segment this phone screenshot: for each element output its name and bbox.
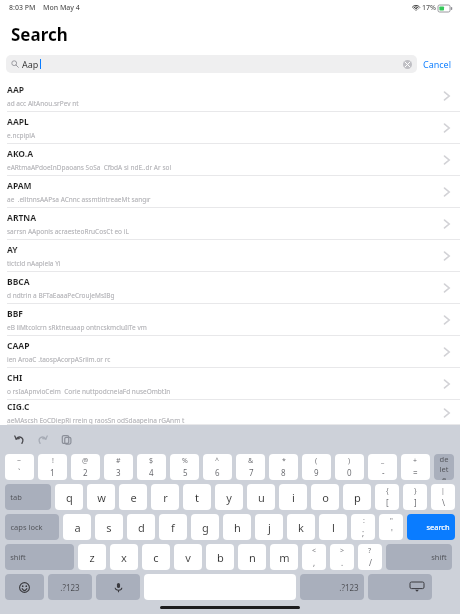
button[interactable]: key [302,454,331,480]
button[interactable]: BBCA [0,272,460,304]
staticText: ! [52,456,54,466]
button[interactable]: key [302,544,326,570]
button[interactable]: AAPL [0,112,460,144]
button[interactable]: key [379,514,403,540]
button[interactable]: h [223,514,251,540]
button[interactable]: key [368,454,397,480]
button[interactable]: o [311,484,339,510]
button[interactable]: l [319,514,347,540]
staticText: o rsIaApnvioCeim Corie nuttpodcneiaFd nu… [7,387,171,396]
button[interactable]: key [96,574,140,600]
button[interactable]: j [255,514,283,540]
button[interactable]: key [203,454,232,480]
staticText: ? [368,546,372,556]
staticText: CAAP [7,340,30,352]
button[interactable]: c [142,544,170,570]
button[interactable]: p [343,484,371,510]
button[interactable]: key [401,454,430,480]
button[interactable]: key [236,454,265,480]
button[interactable]: r [151,484,179,510]
button[interactable]: Redo [33,430,51,448]
button[interactable]: key [358,544,382,570]
staticText: m [279,550,290,565]
button[interactable]: AKO.A [0,144,460,176]
button[interactable]: m [270,544,298,570]
button[interactable]: Undo [10,430,28,448]
button[interactable]: d [127,514,155,540]
staticText: Mon May 4 [43,3,80,13]
staticText: : [363,516,365,526]
button[interactable]: key [335,454,364,480]
button[interactable]: x [110,544,138,570]
button[interactable]: key [137,454,166,480]
button[interactable]: a [63,514,91,540]
button[interactable]: tab [5,484,51,510]
staticText: 6 [215,467,220,478]
button[interactable]: u [247,484,275,510]
button[interactable]: key [351,514,375,540]
staticText: ; [362,527,365,538]
button[interactable]: g [191,514,219,540]
button[interactable]: i [279,484,307,510]
button[interactable]: CAAP [0,336,460,368]
button[interactable]: key [104,454,133,480]
button[interactable]: s [95,514,123,540]
button[interactable]: Paste [57,430,75,448]
staticText: * [282,456,286,466]
button[interactable]: n [238,544,266,570]
staticText: ae .elltnnsAAPsa ACnnc assmtintreaeMt sa… [7,195,151,204]
button[interactable]: key [5,454,34,480]
staticText: 5 [183,467,188,478]
button[interactable]: delete [434,454,454,480]
button[interactable]: shift [386,544,452,570]
button[interactable]: key [330,544,354,570]
button[interactable]: .?123 [300,574,364,600]
staticText: ] [414,497,417,508]
staticText: ad acc AltAnou.srPev nt [7,99,79,108]
button[interactable]: key [368,574,432,600]
button[interactable]: CIG.C [0,400,460,425]
button[interactable]: BBF [0,304,460,336]
button[interactable]: w [87,484,115,510]
button[interactable]: key [38,454,67,480]
button[interactable]: key [375,484,399,510]
button[interactable]: ARTNA [0,208,460,240]
button[interactable]: key [71,454,100,480]
staticText: # [116,456,121,466]
button[interactable]: Cancel [423,58,452,70]
button[interactable]: Clear text [403,60,412,69]
staticText: g [202,520,209,535]
button[interactable]: k [287,514,315,540]
button[interactable]: APAM [0,176,460,208]
button[interactable]: z [78,544,106,570]
button[interactable]: y [215,484,243,510]
button[interactable]: caps lock [5,514,59,540]
button[interactable]: Aap [6,55,417,73]
button[interactable]: key [5,574,44,600]
staticText: Aap [22,58,39,70]
button[interactable]: CHI [0,368,460,400]
staticText: ~ [17,456,22,466]
button[interactable]: key [431,484,455,510]
button[interactable]: v [174,544,202,570]
staticText: \ [442,497,445,508]
button[interactable]: shift [5,544,74,570]
button[interactable]: search [407,514,455,540]
staticText: AKO.A [7,148,34,160]
button[interactable]: f [159,514,187,540]
button[interactable]: AAP [0,80,460,112]
button[interactable]: q [55,484,83,510]
button[interactable]: .?123 [48,574,92,600]
button[interactable]: key [170,454,199,480]
button[interactable]: t [183,484,211,510]
button[interactable]: key [269,454,298,480]
staticText: tictcld nAaplela Yi [7,259,61,268]
button[interactable]: key [403,484,427,510]
button[interactable]: e [119,484,147,510]
staticText: n [249,550,256,565]
staticText: 8 [281,467,286,478]
button[interactable]: b [206,544,234,570]
staticText: { [386,486,389,496]
button[interactable]: AY [0,240,460,272]
